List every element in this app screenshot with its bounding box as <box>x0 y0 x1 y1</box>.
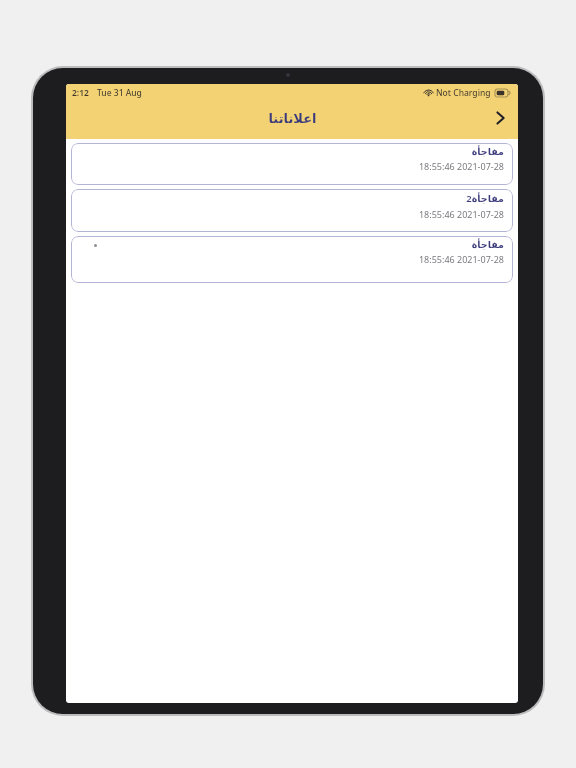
staticText: مفاجأة <box>471 146 504 157</box>
button[interactable]: مفاجأة2 <box>71 189 513 232</box>
staticText: اعلاناتنا <box>268 111 317 126</box>
button[interactable]: مفاجأة <box>71 236 513 283</box>
staticText: 18:55:46 2021-07-28 <box>418 253 504 265</box>
staticText: 18:55:46 2021-07-28 <box>418 208 504 220</box>
staticText: Tue 31 Aug <box>97 87 142 99</box>
button[interactable]: Forward <box>485 103 515 133</box>
staticText: 2:12 <box>72 87 89 99</box>
staticText: 18:55:46 2021-07-28 <box>418 160 504 172</box>
button[interactable]: مفاجأة <box>71 143 513 185</box>
staticText: مفاجأة2 <box>466 192 504 205</box>
staticText: Not Charging <box>436 87 491 99</box>
staticText: مفاجأة <box>471 239 504 250</box>
